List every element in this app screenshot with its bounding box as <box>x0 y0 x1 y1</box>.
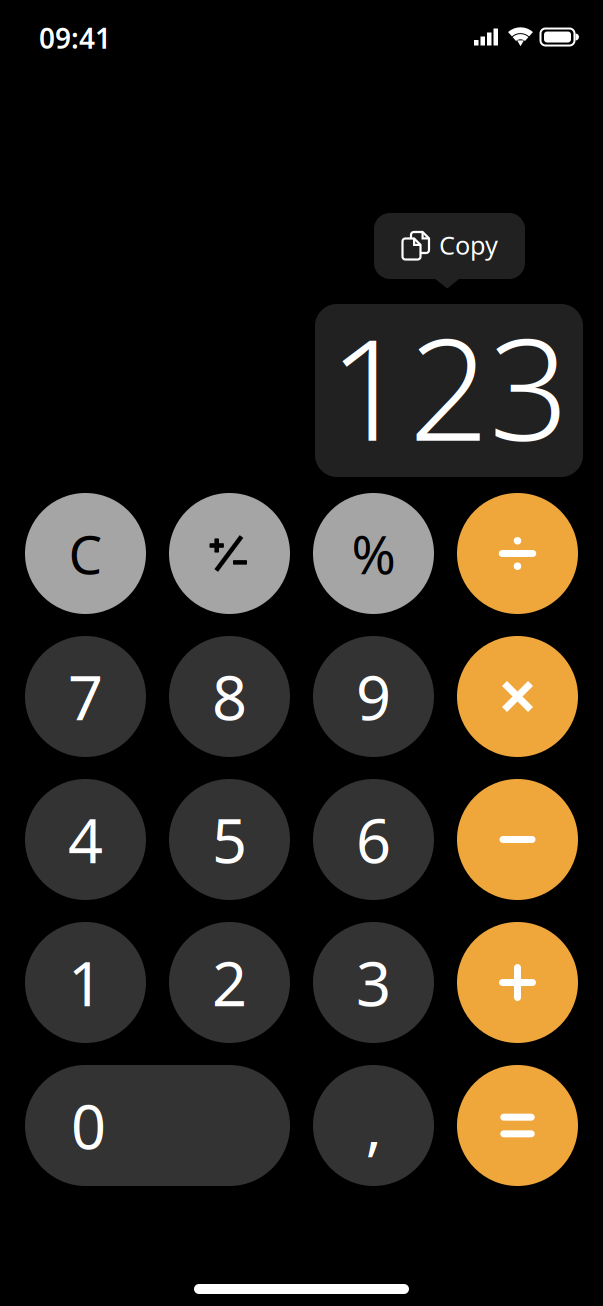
staticText: 4 <box>68 799 103 880</box>
button[interactable]: Copy <box>374 213 525 290</box>
button[interactable]: Clear <box>25 493 146 614</box>
staticText: 3 <box>356 942 391 1023</box>
staticText: 5 <box>212 799 247 880</box>
button[interactable]: 6 <box>313 779 434 900</box>
button[interactable]: 4 <box>25 779 146 900</box>
button[interactable]: Divide <box>457 493 578 614</box>
button[interactable]: 9 <box>313 636 434 757</box>
staticText: Copy <box>439 228 498 262</box>
button[interactable]: 1 <box>25 922 146 1043</box>
staticText: 09:41 <box>39 19 111 57</box>
button[interactable]: 7 <box>25 636 146 757</box>
button[interactable]: 0 <box>25 1065 290 1186</box>
button[interactable]: Percent <box>313 493 434 614</box>
button[interactable]: 3 <box>313 922 434 1043</box>
button[interactable]: Decimal separator <box>313 1065 434 1186</box>
staticText: 0 <box>71 1085 106 1166</box>
button[interactable]: 8 <box>169 636 290 757</box>
staticText: 8 <box>212 656 247 737</box>
button[interactable]: Subtract <box>457 779 578 900</box>
staticText: 1 <box>68 942 103 1023</box>
staticText: 123 <box>329 293 569 479</box>
button[interactable]: Toggle sign <box>169 493 290 614</box>
button[interactable]: Multiply <box>457 636 578 757</box>
staticText: 6 <box>356 799 391 880</box>
button[interactable]: 5 <box>169 779 290 900</box>
button[interactable]: Equals <box>457 1065 578 1186</box>
button[interactable]: 2 <box>169 922 290 1043</box>
staticText: 7 <box>68 656 103 737</box>
staticText: C <box>68 518 102 589</box>
staticText: 2 <box>212 942 247 1023</box>
staticText: % <box>351 518 395 589</box>
staticText: , <box>365 1085 381 1166</box>
button[interactable]: Add <box>457 922 578 1043</box>
staticText: 9 <box>356 656 391 737</box>
